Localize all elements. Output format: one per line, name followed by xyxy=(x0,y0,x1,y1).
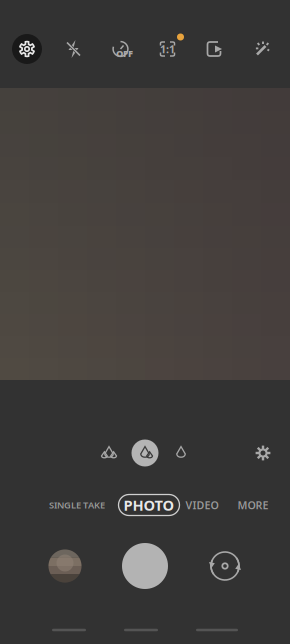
button[interactable]: Ultra wide lens xyxy=(96,438,122,468)
staticText: SINGLE TAKE xyxy=(49,499,105,511)
button[interactable]: Brightness xyxy=(248,438,278,468)
button[interactable]: Effects xyxy=(238,27,285,71)
button[interactable]: Aspect ratio 1 to 1 xyxy=(144,27,191,71)
button[interactable]: Settings xyxy=(4,27,50,71)
button[interactable]: Wide lens xyxy=(130,438,160,468)
button[interactable]: SINGLE TAKE xyxy=(29,493,125,517)
button[interactable]: PHOTO xyxy=(125,493,173,517)
staticText: MORE xyxy=(237,498,268,512)
staticText: VIDEO xyxy=(185,498,218,512)
button[interactable]: Telephoto lens xyxy=(168,438,194,468)
button[interactable]: Flash off xyxy=(50,27,97,71)
staticText: OFF xyxy=(116,47,133,60)
button[interactable]: Timer off xyxy=(97,27,144,71)
staticText: 1:1 xyxy=(160,42,175,56)
button[interactable]: Motion photo xyxy=(191,27,238,71)
button[interactable]: Gallery xyxy=(40,541,90,591)
button[interactable]: VIDEO xyxy=(173,493,231,517)
button[interactable]: Switch camera xyxy=(200,541,250,591)
staticText: PHOTO xyxy=(123,495,174,515)
button[interactable]: Shutter xyxy=(117,538,173,594)
button[interactable]: MORE xyxy=(231,493,275,517)
